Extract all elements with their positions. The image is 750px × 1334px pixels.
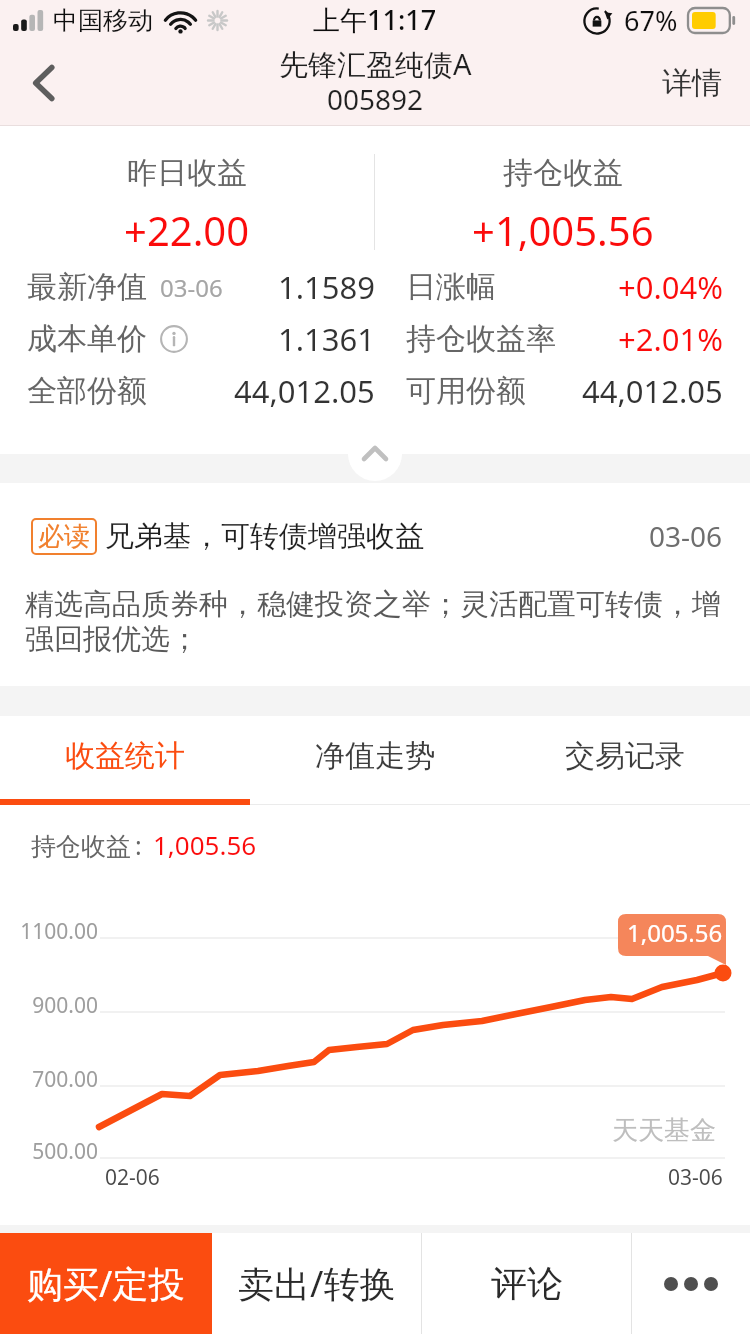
staticText: 卖出/转换 <box>238 1259 396 1308</box>
staticText: 005892 <box>327 80 424 118</box>
button[interactable]: 评论 <box>422 1233 631 1334</box>
staticText: 1.1361 <box>278 318 375 360</box>
staticText: 02-06 <box>105 1163 160 1192</box>
staticText: 900.00 <box>0 991 98 1020</box>
staticText: 详情 <box>662 64 722 102</box>
staticText: 全部份额 <box>27 372 147 410</box>
button[interactable]: More options <box>632 1233 750 1334</box>
staticText: 1100.00 <box>0 917 98 946</box>
staticText: 持仓收益 <box>31 831 131 862</box>
staticText: 精选高品质券种，稳健投资之举；灵活配置可转债，增强回报优选； <box>25 586 734 658</box>
button[interactable]: Back <box>0 40 88 126</box>
staticText: 必读 <box>38 520 90 553</box>
staticText: 先锋汇盈纯债A <box>279 44 472 84</box>
staticText: 上午11:17 <box>313 1 437 38</box>
button[interactable]: 交易记录 <box>500 716 750 805</box>
staticText: 昨日收益 <box>127 154 247 192</box>
staticText: 中国移动 <box>53 5 153 36</box>
staticText: 净值走势 <box>315 737 435 775</box>
staticText: 可用份额 <box>406 372 526 410</box>
staticText: 持仓收益 <box>503 154 623 192</box>
staticText: +2.01% <box>618 318 723 360</box>
staticText: : <box>135 828 142 862</box>
staticText: 兄弟基，可转债增强收益 <box>105 518 424 555</box>
staticText: 03-06 <box>649 517 723 555</box>
staticText: 44,012.05 <box>582 370 723 412</box>
staticText: 1,005.56 <box>627 916 723 949</box>
staticText: 03-06 <box>160 271 223 304</box>
staticText: 1,005.56 <box>153 827 257 862</box>
staticText: +22.00 <box>124 203 250 255</box>
staticText: 收益统计 <box>65 737 185 775</box>
staticText: 交易记录 <box>565 737 685 775</box>
staticText: 1.1589 <box>278 266 375 308</box>
button[interactable]: 净值走势 <box>250 716 500 805</box>
button[interactable]: 收益统计 <box>0 716 250 805</box>
button[interactable]: 详情 <box>662 40 722 126</box>
button[interactable]: 卖出/转换 <box>212 1233 421 1334</box>
staticText: 持仓收益率 <box>406 320 556 358</box>
button[interactable]: 购买/定投 <box>0 1233 212 1334</box>
staticText: 成本单价 <box>27 320 147 358</box>
staticText: +1,005.56 <box>472 203 654 255</box>
staticText: 500.00 <box>0 1137 98 1166</box>
staticText: 44,012.05 <box>234 370 375 412</box>
button[interactable]: 必读 <box>31 517 723 555</box>
staticText: 购买/定投 <box>27 1259 185 1308</box>
staticText: +0.04% <box>618 266 723 308</box>
staticText: 03-06 <box>668 1163 723 1192</box>
staticText: 天天基金 <box>612 1114 716 1147</box>
staticText: 日涨幅 <box>406 268 496 306</box>
button[interactable]: Collapse details <box>0 454 750 483</box>
staticText: 评论 <box>491 1261 563 1306</box>
staticText: 700.00 <box>0 1065 98 1094</box>
staticText: 最新净值 <box>27 268 147 306</box>
staticText: 67% <box>624 2 678 39</box>
